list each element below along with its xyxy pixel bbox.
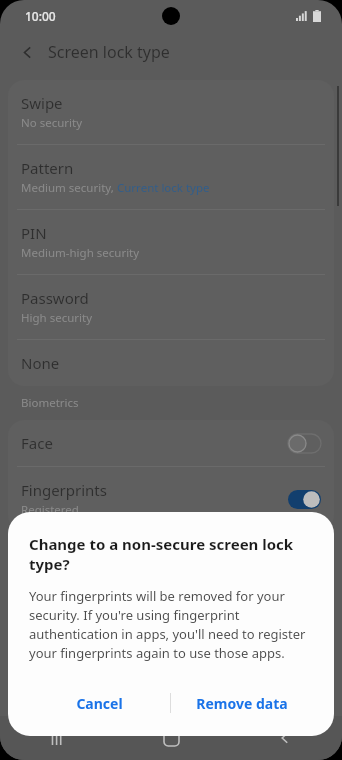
staticText: Face [21, 433, 53, 453]
staticText: 10:00 [25, 8, 56, 24]
button[interactable]: Face [8, 420, 334, 466]
staticText: None [21, 353, 60, 373]
staticText: High security [21, 310, 93, 326]
staticText: Swipe [21, 93, 63, 113]
staticText: PIN [21, 223, 47, 243]
staticText: Remove data [196, 694, 288, 713]
button[interactable]: Pattern [8, 145, 334, 209]
button[interactable]: Password [8, 275, 334, 339]
button[interactable]: Recent apps [33, 716, 81, 760]
button[interactable]: Home [147, 716, 195, 760]
staticText: Medium security, [21, 180, 117, 196]
staticText: Current lock type [117, 180, 210, 196]
staticText: Screen lock type [48, 41, 170, 63]
button[interactable]: Toggle off [288, 434, 321, 453]
staticText: Your fingerprints will be removed for yo… [29, 587, 313, 662]
staticText: Change to a non-secure screen lock type? [29, 534, 313, 574]
staticText: Registered [21, 502, 79, 518]
button[interactable]: Toggle on [288, 490, 321, 509]
button[interactable]: None [8, 340, 334, 386]
button[interactable]: Back [10, 35, 44, 69]
button[interactable]: PIN [8, 210, 334, 274]
staticText: Medium-high security [21, 245, 140, 261]
staticText: Cancel [76, 694, 123, 713]
staticText: Biometrics [21, 395, 79, 411]
staticText: Password [21, 288, 89, 308]
staticText: Fingerprints [21, 480, 107, 500]
button[interactable]: Cancel [29, 686, 170, 720]
button[interactable]: Back [261, 716, 309, 760]
staticText: Pattern [21, 158, 74, 178]
button[interactable]: Fingerprints [8, 467, 334, 531]
button[interactable]: Swipe [8, 80, 334, 144]
staticText: No security [21, 115, 83, 131]
button[interactable]: Remove data [171, 686, 313, 720]
